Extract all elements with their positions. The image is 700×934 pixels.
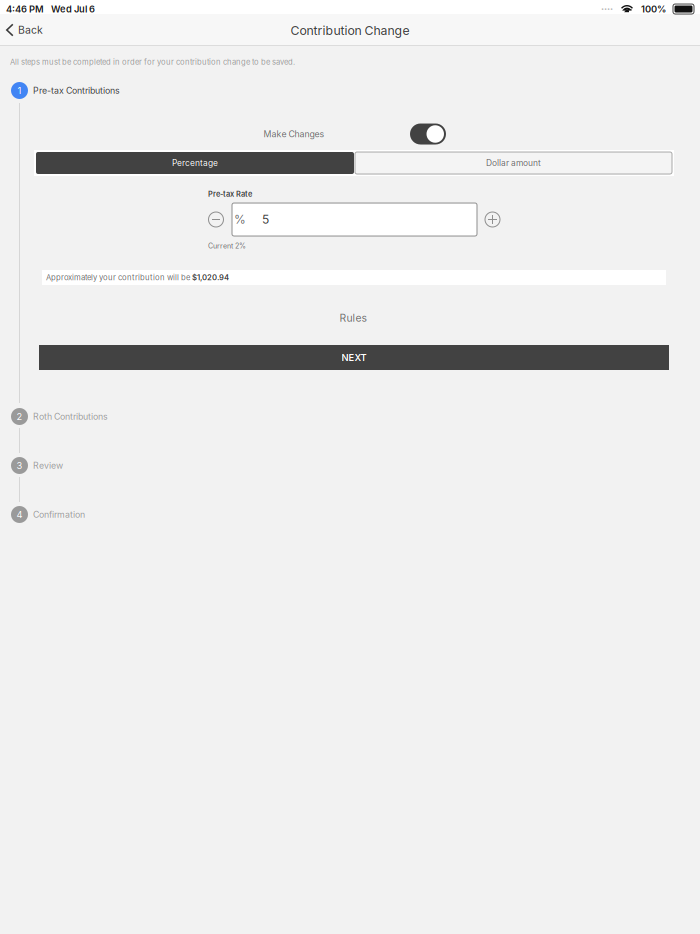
button[interactable]: Back bbox=[0, 15, 60, 45]
staticText: 100% bbox=[641, 3, 666, 15]
staticText: Rules bbox=[339, 312, 366, 324]
button[interactable]: Rules bbox=[323, 308, 383, 328]
staticText: Confirmation bbox=[33, 509, 85, 520]
staticText: Back bbox=[18, 24, 43, 36]
staticText: Make Changes bbox=[263, 129, 324, 139]
button[interactable]: Decrease rate bbox=[203, 206, 229, 232]
button[interactable]: NEXT bbox=[39, 345, 669, 370]
staticText: Percentage bbox=[172, 158, 218, 168]
staticText: •••• bbox=[601, 6, 613, 12]
staticText: 5 bbox=[262, 212, 269, 227]
button[interactable]: Make Changes bbox=[410, 123, 446, 144]
staticText: Current 2% bbox=[208, 242, 246, 250]
staticText: 3 bbox=[16, 460, 22, 471]
staticText: 4 bbox=[16, 509, 22, 520]
staticText: Approximately your contribution will be bbox=[46, 273, 192, 282]
staticText: Wed Jul 6 bbox=[51, 3, 95, 15]
staticText: $1,020.94 bbox=[192, 273, 229, 282]
staticText: Roth Contributions bbox=[33, 411, 108, 422]
staticText: Review bbox=[33, 460, 63, 471]
staticText: Contribution Change bbox=[290, 23, 409, 38]
staticText: 2 bbox=[16, 411, 22, 422]
button[interactable]: Dollar amount bbox=[355, 152, 672, 174]
button[interactable]: Percentage bbox=[36, 152, 354, 174]
staticText: All steps must be completed in order for… bbox=[10, 57, 295, 67]
staticText: Pre-tax Contributions bbox=[33, 85, 120, 96]
staticText: 1 bbox=[17, 85, 21, 96]
staticText: 4:46 PM bbox=[6, 3, 44, 15]
staticText: Pre-tax Rate bbox=[208, 189, 252, 198]
staticText: % bbox=[234, 212, 246, 227]
button[interactable]: Increase rate bbox=[479, 206, 505, 232]
staticText: Dollar amount bbox=[486, 158, 541, 168]
staticText: NEXT bbox=[341, 352, 366, 363]
